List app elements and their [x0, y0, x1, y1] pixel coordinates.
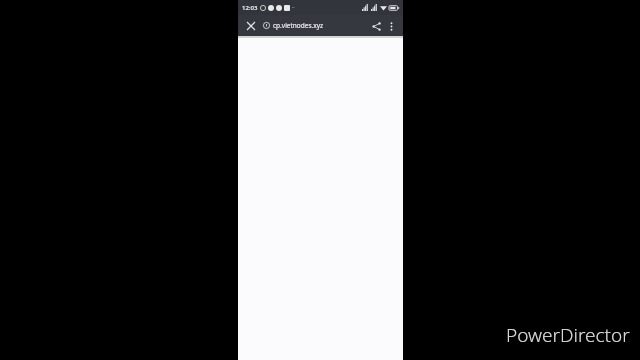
staticText: cp.vietnodes.xyz: [273, 21, 324, 30]
button[interactable]: cp.vietnodes.xyz: [263, 15, 364, 36]
button[interactable]: Share: [368, 18, 384, 34]
staticText: PowerDirector: [506, 322, 630, 348]
staticText: 12:03: [242, 4, 258, 12]
button[interactable]: More options: [384, 19, 398, 33]
button[interactable]: Close: [243, 18, 259, 34]
staticText: ··: [292, 4, 295, 11]
